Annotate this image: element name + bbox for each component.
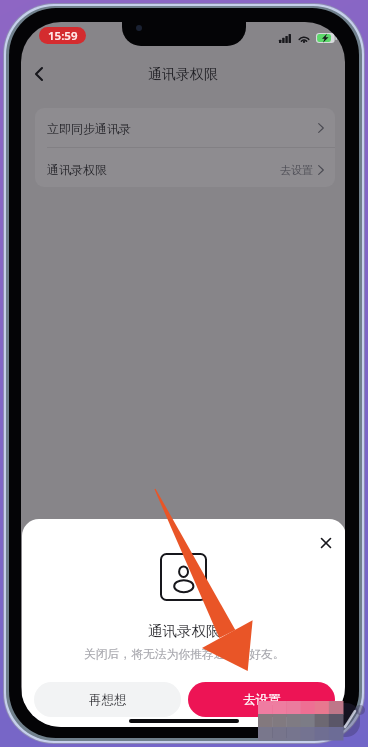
button[interactable]: 通讯录权限 [35, 150, 335, 187]
staticText: 通讯录权限 [148, 66, 218, 84]
button[interactable]: Back [25, 60, 53, 88]
staticText: 通讯录权限 [47, 162, 107, 177]
staticText: 去设置 [280, 163, 313, 177]
button[interactable]: Close [313, 530, 338, 555]
staticText: 去设置 [243, 692, 281, 708]
button[interactable]: 去设置 [188, 682, 335, 717]
button[interactable]: 立即同步通讯录 [35, 108, 335, 148]
staticText: 通讯录权限 [148, 622, 221, 640]
button[interactable]: 再想想 [34, 682, 181, 717]
staticText: 15:59 [48, 28, 78, 44]
staticText: 再想想 [89, 692, 127, 708]
staticText: 立即同步通讯录 [47, 121, 131, 136]
staticText: 关闭后，将无法为你推荐通讯录好友。 [84, 647, 285, 662]
